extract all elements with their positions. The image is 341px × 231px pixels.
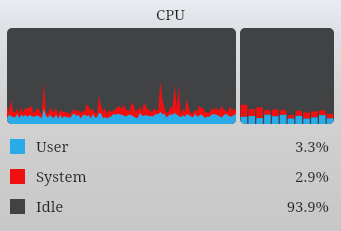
staticText: 3.3% <box>295 136 329 156</box>
button[interactable]: Idle <box>0 191 341 221</box>
staticText: 2.9% <box>295 166 329 186</box>
button[interactable]: CPU history graph <box>7 28 236 124</box>
staticText: System <box>36 166 87 186</box>
staticText: 93.9% <box>286 196 329 216</box>
button[interactable]: System <box>0 161 341 191</box>
staticText: Idle <box>36 196 64 216</box>
button[interactable]: User <box>0 131 341 161</box>
staticText: CPU <box>156 4 186 24</box>
button[interactable]: CPU per-core graph <box>240 28 334 124</box>
staticText: User <box>36 136 69 156</box>
